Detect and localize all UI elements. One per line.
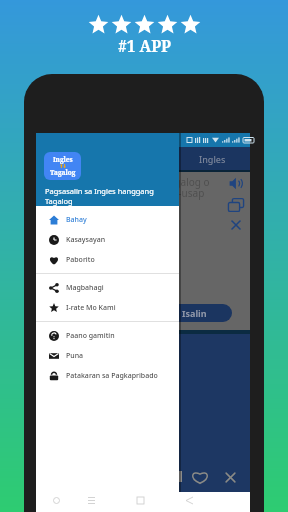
button[interactable]: Recent [53, 497, 60, 504]
staticText: Puna [66, 351, 84, 361]
staticText: Mag-type ng Tagalog o Ingles para mag-us… [102, 175, 210, 200]
staticText: Ingles [53, 155, 73, 164]
staticText: Patakaran sa Pagkapribado [66, 371, 158, 381]
staticText: I-rate Mo Kami [66, 303, 116, 313]
button[interactable]: Back [186, 497, 193, 504]
staticText: Isalin [182, 307, 207, 319]
staticText: Pagsasalin sa Ingles hanggang Tagalog [45, 186, 154, 206]
staticText: Ingles [199, 153, 226, 165]
button[interactable]: Home [137, 497, 144, 504]
staticText: Kasaysayan [66, 235, 106, 245]
staticText: #1 APP [118, 35, 171, 56]
button[interactable]: Paano gamitin [36, 326, 179, 346]
button[interactable]: Puna [36, 346, 179, 366]
button[interactable]: Magbahagi [36, 278, 179, 298]
button[interactable]: Isalin [156, 304, 232, 322]
staticText: Bahay [66, 215, 87, 225]
button[interactable]: Favorite [189, 466, 211, 488]
staticText: Paano gamitin [66, 331, 115, 341]
button[interactable]: Patakaran sa Pagkapribado [36, 366, 179, 386]
button[interactable]: Close [219, 466, 241, 488]
button[interactable]: Bahay [36, 210, 179, 230]
staticText: Magbahagi [66, 283, 104, 293]
button[interactable]: Menu [88, 497, 95, 504]
button[interactable]: Copy [226, 195, 246, 215]
button[interactable]: I-rate Mo Kami [36, 298, 179, 318]
staticText: Tagalog [50, 168, 76, 177]
button[interactable]: Kasaysayan [36, 230, 179, 250]
button[interactable]: Paborito [36, 250, 179, 270]
button[interactable]: Clear [226, 215, 246, 235]
button[interactable]: Speak [226, 173, 246, 193]
staticText: Paborito [66, 255, 95, 265]
